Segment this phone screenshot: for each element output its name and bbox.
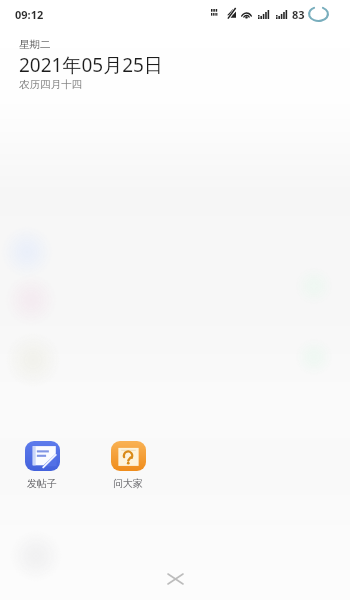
staticText: 83 xyxy=(292,7,305,22)
button[interactable]: 问大家 xyxy=(102,441,154,490)
staticText: 星期二 xyxy=(19,38,51,51)
button[interactable]: 发帖子 xyxy=(16,441,68,490)
button[interactable]: Close xyxy=(158,561,193,596)
staticText: 2021年05月25日 xyxy=(19,52,163,78)
staticText: 问大家 xyxy=(113,477,143,490)
staticText: 09:12 xyxy=(15,7,44,22)
staticText: 发帖子 xyxy=(27,477,57,490)
staticText: 农历四月十四 xyxy=(19,78,82,91)
